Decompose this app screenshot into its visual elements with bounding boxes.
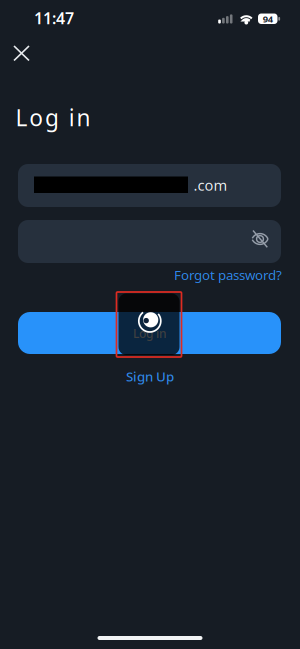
button[interactable] (18, 312, 281, 354)
button[interactable]: Sign Up (126, 367, 174, 385)
staticText: .com (193, 175, 227, 195)
staticText: Forgot password? (174, 266, 282, 284)
staticText: Log in (15, 102, 90, 133)
button[interactable] (18, 220, 281, 263)
button[interactable] (247, 226, 273, 252)
button[interactable]: .com (18, 164, 281, 207)
staticText: 94 (263, 13, 273, 25)
staticText: 11:47 (34, 7, 74, 29)
button[interactable] (7, 39, 36, 68)
staticText: Log in (133, 325, 167, 341)
button[interactable]: Forgot password? (174, 266, 282, 284)
staticText: Sign Up (126, 367, 174, 385)
